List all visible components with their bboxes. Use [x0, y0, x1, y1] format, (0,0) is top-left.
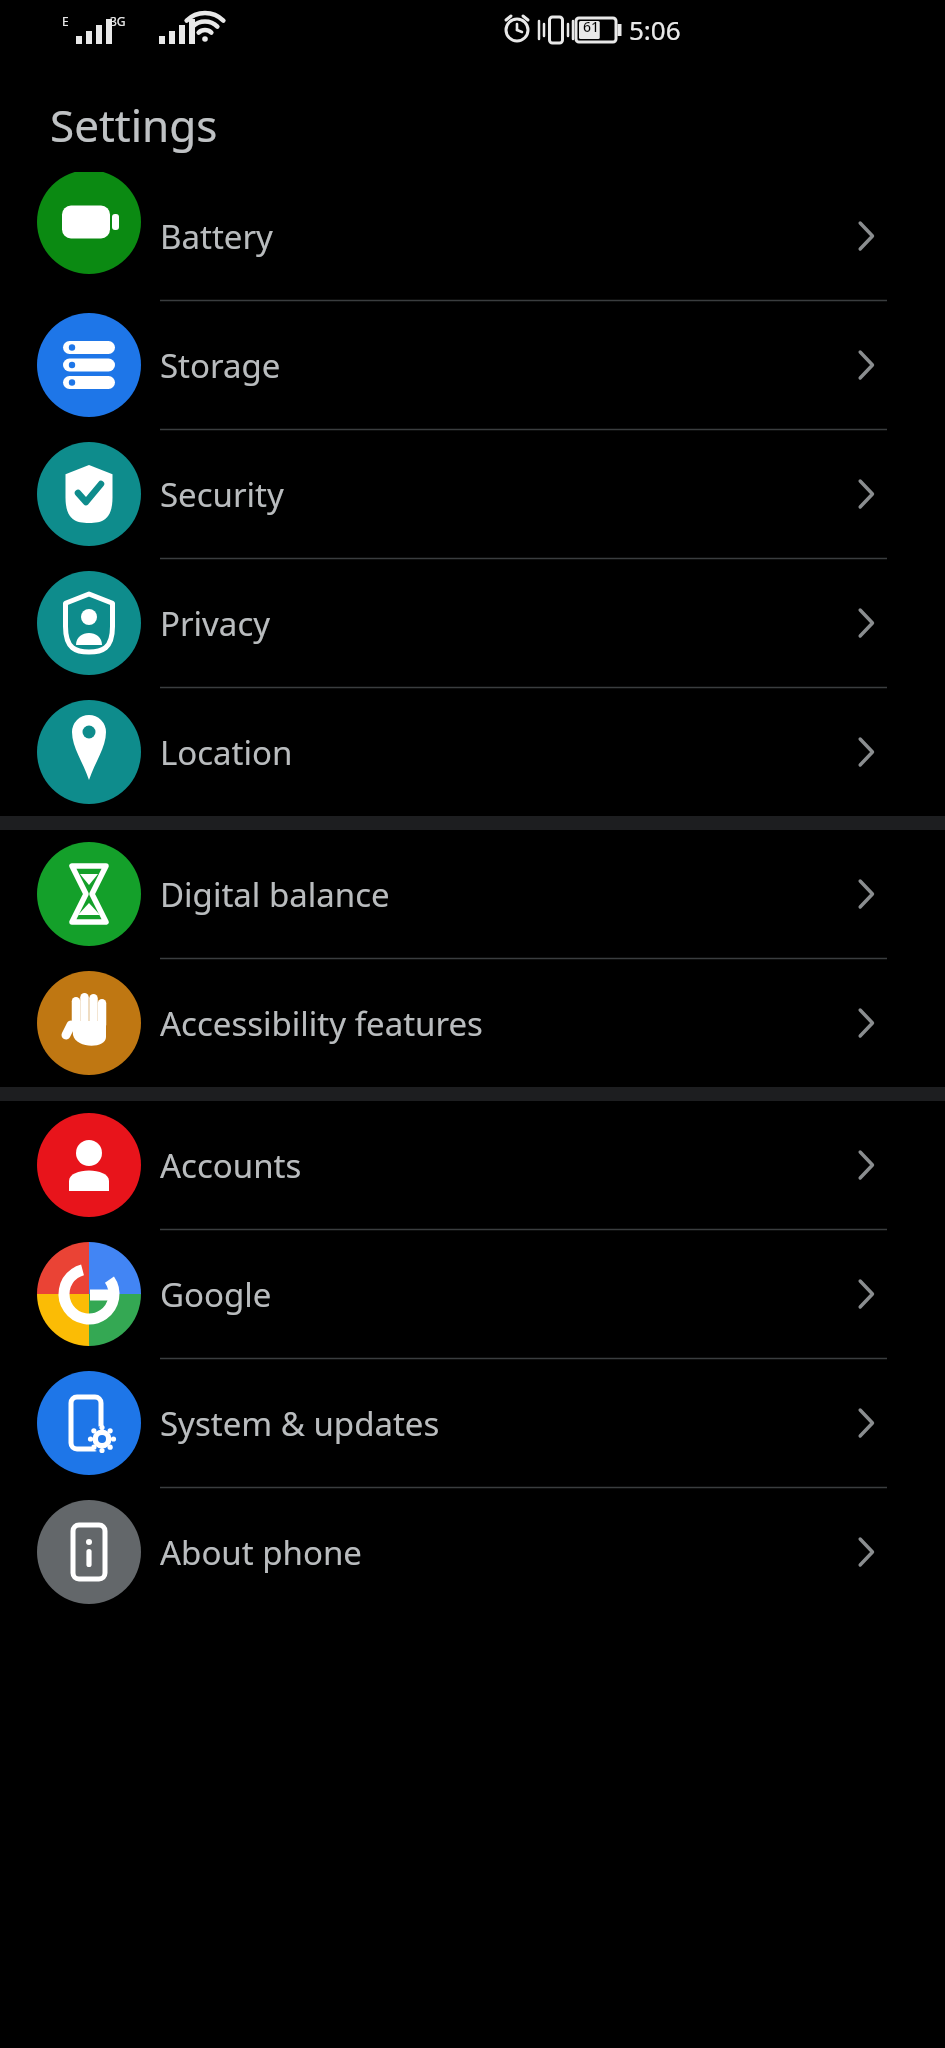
button[interactable]: Storage	[0, 301, 945, 429]
staticText: 3G	[110, 13, 126, 29]
staticText: Google	[160, 1272, 272, 1317]
staticText: Security	[160, 472, 284, 517]
staticText: Accounts	[160, 1143, 302, 1188]
button[interactable]: Security	[0, 430, 945, 558]
staticText: Storage	[160, 343, 281, 388]
staticText: Battery	[160, 214, 273, 259]
button[interactable]: Location	[0, 688, 945, 816]
button[interactable]: System & updates	[0, 1359, 945, 1487]
staticText: System & updates	[160, 1401, 440, 1446]
button[interactable]: Privacy	[0, 559, 945, 687]
staticText: E	[62, 13, 69, 29]
staticText: 5:06	[629, 12, 681, 47]
staticText: 61	[583, 17, 600, 36]
button[interactable]: Digital balance	[0, 830, 945, 958]
staticText: Privacy	[160, 601, 271, 646]
staticText: About phone	[160, 1530, 362, 1575]
staticText: Location	[160, 730, 293, 775]
button[interactable]: Battery	[0, 172, 945, 300]
button[interactable]: Accounts	[0, 1101, 945, 1229]
staticText: Digital balance	[160, 872, 390, 917]
button[interactable]: Accessibility features	[0, 959, 945, 1087]
button[interactable]: Google	[0, 1230, 945, 1358]
staticText: Accessibility features	[160, 1001, 483, 1046]
button[interactable]: About phone	[0, 1488, 945, 1616]
staticText: Settings	[50, 95, 218, 155]
